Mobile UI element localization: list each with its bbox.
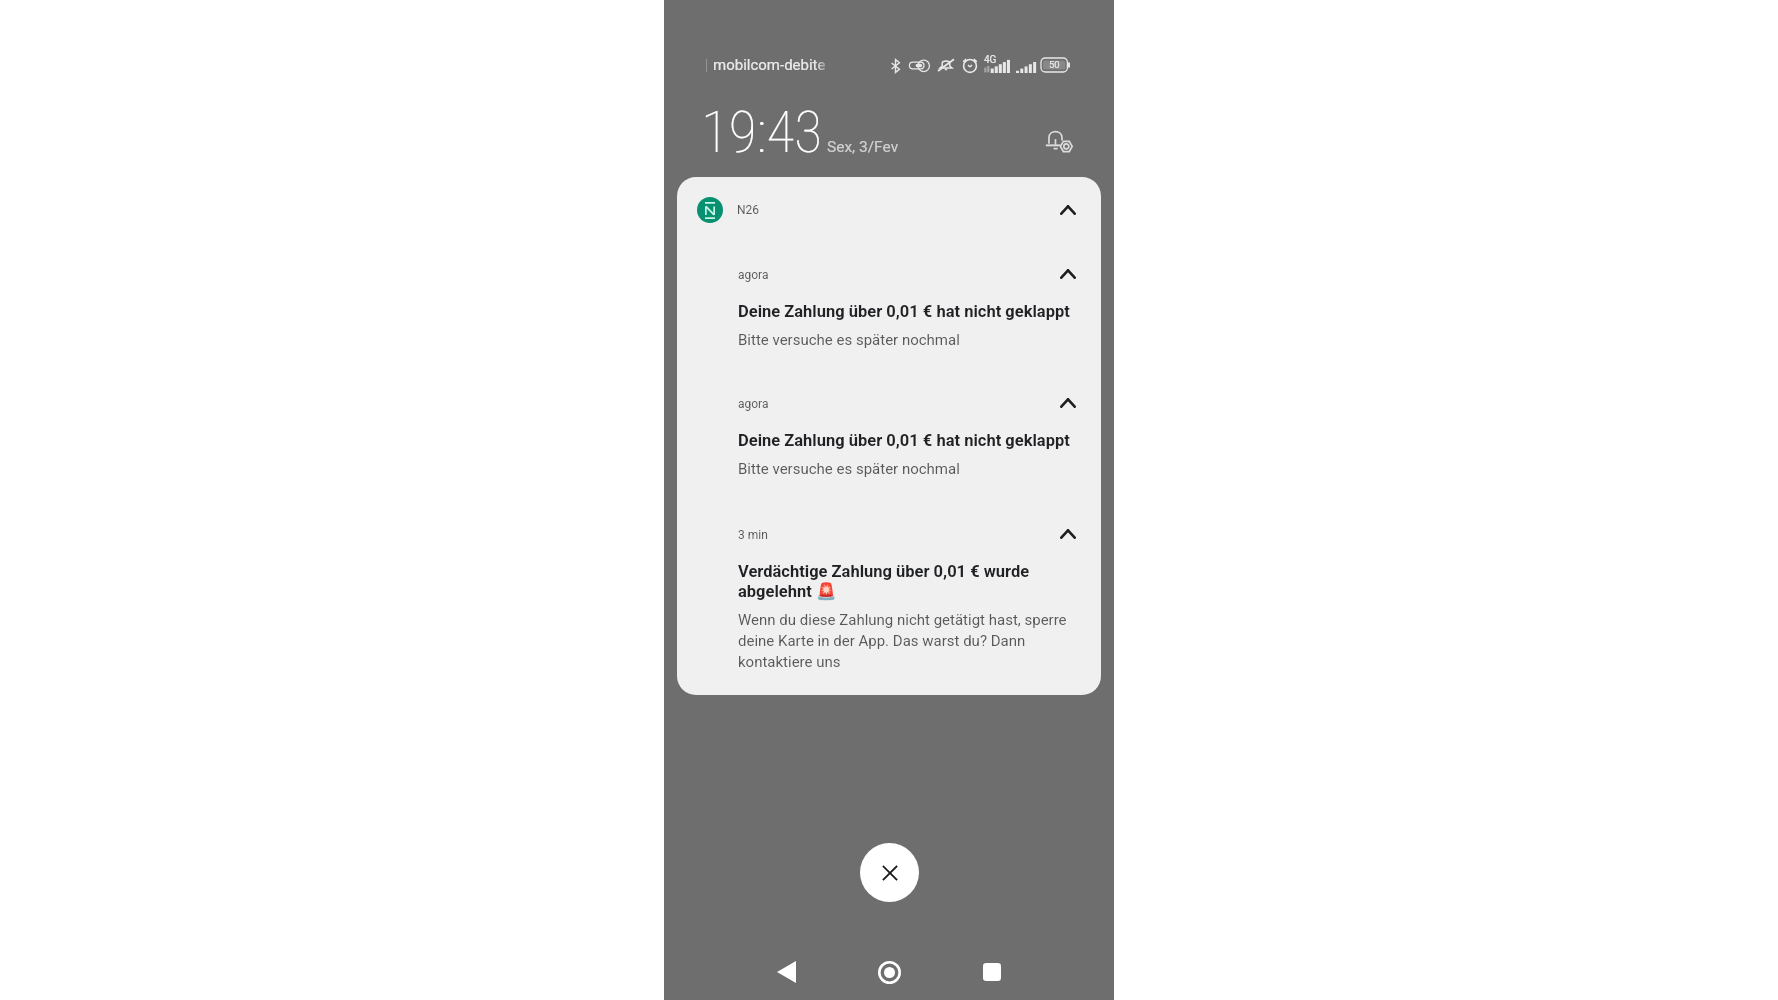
staticText: Bitte versuche es später nochmal: [738, 460, 960, 478]
button[interactable]: Home: [865, 948, 913, 996]
staticText: agora: [738, 268, 769, 282]
button[interactable]: Collapse notification: [1049, 191, 1087, 229]
staticText: 3 min: [738, 528, 768, 542]
button[interactable]: Collapse notification: [1049, 384, 1087, 422]
button[interactable]: Notification settings: [1038, 119, 1080, 161]
staticText: Deine Zahlung über 0,01 € hat nicht gekl…: [738, 431, 1070, 450]
button[interactable]: Recent apps: [968, 948, 1016, 996]
staticText: 4G: [984, 54, 997, 66]
staticText: Verdächtige Zahlung über 0,01 € wurde ab…: [738, 562, 1072, 601]
button[interactable]: Collapse notification: [1049, 515, 1087, 553]
staticText: 19:43: [701, 99, 823, 166]
staticText: mobilcom-debite: [713, 56, 826, 74]
button[interactable]: Back: [762, 948, 810, 996]
staticText: N26: [737, 203, 760, 217]
staticText: Wenn du diese Zahlung nicht getätigt has…: [738, 611, 1072, 670]
button[interactable]: Collapse notification: [677, 528, 1101, 670]
button[interactable]: Collapse notification: [677, 397, 1101, 478]
staticText: Deine Zahlung über 0,01 € hat nicht gekl…: [738, 302, 1070, 321]
staticText: agora: [738, 397, 769, 411]
button[interactable]: Collapse notification: [677, 268, 1101, 349]
staticText: 50: [1049, 59, 1060, 70]
staticText: Sex, 3/Fev: [827, 138, 899, 156]
button[interactable]: Clear all notifications: [860, 843, 919, 902]
staticText: Bitte versuche es später nochmal: [738, 331, 960, 349]
button[interactable]: Collapse notification: [1049, 255, 1087, 293]
